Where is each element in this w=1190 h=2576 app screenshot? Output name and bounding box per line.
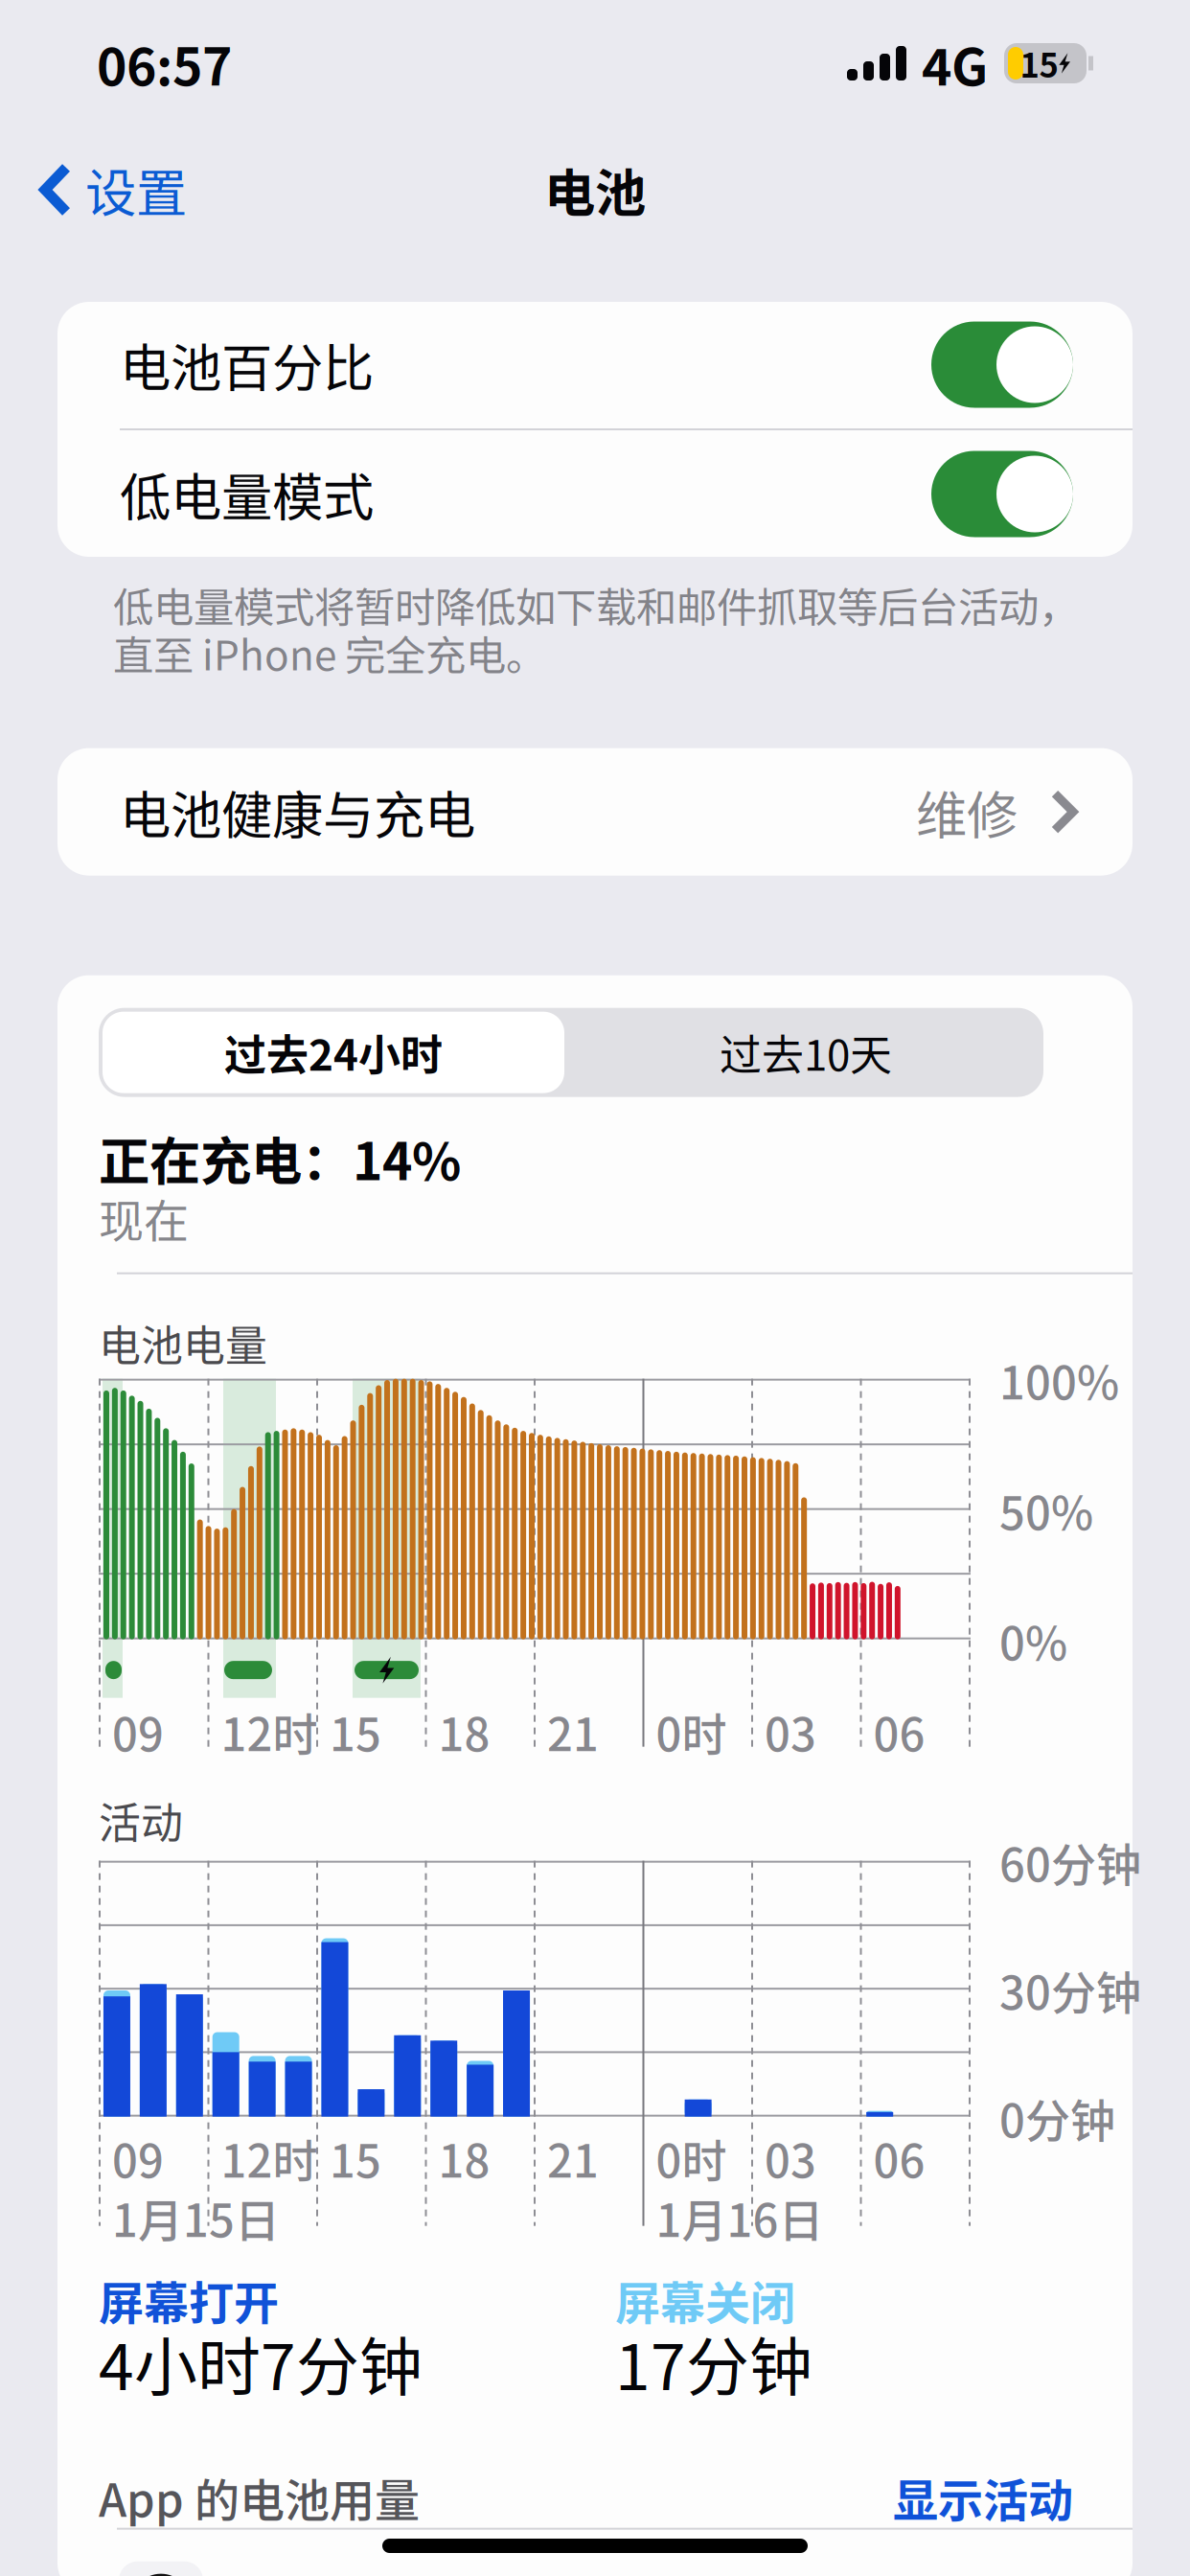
staticText: 17分钟 bbox=[615, 2317, 812, 2408]
button[interactable]: 显示活动 bbox=[893, 2465, 1073, 2530]
staticText: 15 bbox=[330, 1699, 381, 1764]
staticText: 屏幕关闭 bbox=[615, 2267, 795, 2332]
button[interactable]: 过去24小时 bbox=[99, 1008, 568, 1097]
staticText: 03 bbox=[765, 2125, 816, 2191]
staticText: 06 bbox=[873, 1699, 925, 1764]
staticText: 06:57 bbox=[97, 26, 232, 100]
staticText: 设置 bbox=[85, 153, 187, 227]
staticText: 电池百分比 bbox=[120, 328, 374, 402]
staticText: 低电量模式 bbox=[120, 457, 374, 531]
staticText: 100% bbox=[999, 1347, 1119, 1412]
staticText: 现在 bbox=[99, 1185, 189, 1250]
staticText: 0时 bbox=[656, 2125, 727, 2191]
button[interactable]: 低电量模式 bbox=[57, 430, 1133, 558]
staticText: 0时 bbox=[656, 1699, 727, 1764]
staticText: 活动 bbox=[99, 1790, 183, 1851]
staticText: 15 bbox=[1020, 39, 1058, 87]
staticText: 1月16日 bbox=[656, 2185, 824, 2250]
staticText: 21 bbox=[547, 2125, 599, 2191]
staticText: 直至 iPhone 完全充电。 bbox=[113, 623, 546, 682]
staticText: 1月15日 bbox=[112, 2185, 280, 2250]
staticText: App 的电池用量 bbox=[99, 2465, 420, 2530]
staticText: 12时 bbox=[221, 2125, 318, 2191]
staticText: 18 bbox=[438, 1699, 490, 1764]
staticText: 过去10天 bbox=[720, 1022, 892, 1083]
staticText: 09 bbox=[112, 1699, 164, 1764]
button[interactable]: 设置 bbox=[21, 139, 204, 240]
staticText: 0% bbox=[999, 1608, 1067, 1673]
staticText: 4小时7分钟 bbox=[99, 2317, 423, 2408]
staticText: 09 bbox=[112, 2125, 164, 2191]
staticText: 21 bbox=[547, 1699, 599, 1764]
button[interactable]: 过去10天 bbox=[568, 1008, 1043, 1097]
staticText: 30分钟 bbox=[999, 1957, 1141, 2022]
staticText: 过去24小时 bbox=[224, 1022, 443, 1083]
staticText: 电池电量 bbox=[99, 1313, 267, 1374]
staticText: 正在充电：14% bbox=[99, 1121, 461, 1195]
staticText: 显示活动 bbox=[893, 2465, 1073, 2530]
staticText: 06 bbox=[873, 2125, 925, 2191]
staticText: 18 bbox=[438, 2125, 490, 2191]
staticText: 4G bbox=[922, 26, 988, 100]
button[interactable]: 电池健康与充电 bbox=[57, 748, 1133, 876]
staticText: 屏幕打开 bbox=[99, 2267, 279, 2332]
staticText: 60分钟 bbox=[999, 1829, 1141, 1894]
staticText: 12时 bbox=[221, 1699, 318, 1764]
staticText: 15 bbox=[330, 2125, 381, 2191]
staticText: 电池健康与充电 bbox=[120, 775, 475, 849]
staticText: 低电量模式将暂时降低如下载和邮件抓取等后台活动， bbox=[113, 575, 1079, 634]
staticText: 03 bbox=[765, 1699, 816, 1764]
staticText: 50% bbox=[999, 1477, 1093, 1543]
staticText: 维修 bbox=[916, 775, 1018, 849]
staticText: 0分钟 bbox=[999, 2085, 1115, 2150]
button[interactable]: 电池百分比 bbox=[57, 301, 1133, 428]
staticText: 电池 bbox=[544, 153, 646, 227]
